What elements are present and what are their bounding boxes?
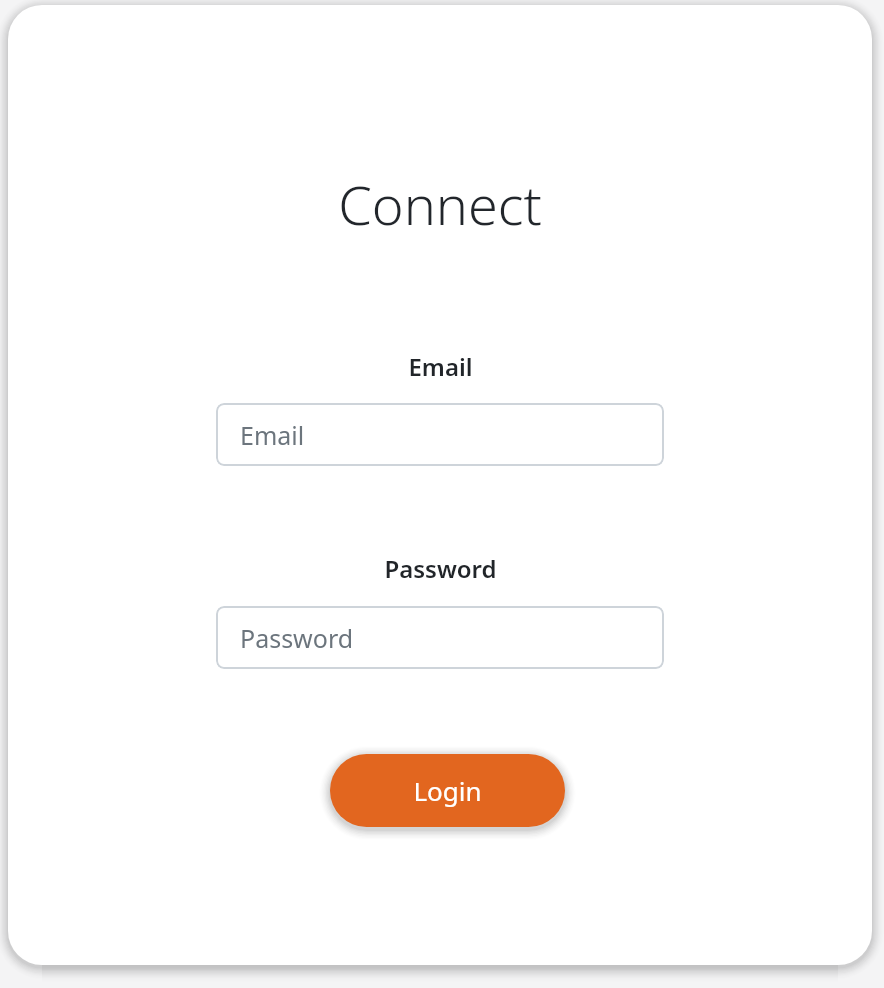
staticText: Email	[408, 350, 473, 382]
button[interactable]: Login	[330, 754, 565, 827]
button[interactable]: Password	[216, 606, 664, 669]
staticText: Password	[384, 552, 497, 584]
staticText: Password	[240, 621, 354, 655]
staticText: Connect	[338, 167, 542, 239]
staticText: Email	[240, 418, 305, 452]
button[interactable]: Email	[216, 403, 664, 466]
staticText: Login	[413, 773, 482, 808]
